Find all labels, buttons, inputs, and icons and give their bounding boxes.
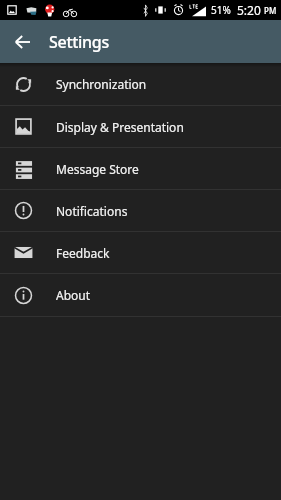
staticText: Feedback bbox=[56, 245, 110, 261]
button[interactable]: Notifications bbox=[0, 190, 281, 232]
staticText: PM bbox=[264, 5, 277, 16]
button[interactable]: Message Store bbox=[0, 148, 281, 190]
button[interactable]: About bbox=[0, 274, 281, 317]
button[interactable]: Synchronization bbox=[0, 63, 281, 106]
staticText: Display & Presentation bbox=[56, 119, 184, 135]
staticText: 5:20 bbox=[237, 2, 261, 18]
staticText: About bbox=[56, 287, 91, 303]
staticText: Settings bbox=[49, 31, 109, 53]
staticText: Notifications bbox=[56, 203, 128, 219]
button[interactable]: Display & Presentation bbox=[0, 106, 281, 148]
button[interactable]: Navigate up bbox=[0, 20, 44, 63]
staticText: Synchronization bbox=[56, 76, 147, 92]
button[interactable]: Feedback bbox=[0, 232, 281, 274]
staticText: Message Store bbox=[56, 161, 139, 177]
staticText: 51% bbox=[211, 3, 231, 17]
